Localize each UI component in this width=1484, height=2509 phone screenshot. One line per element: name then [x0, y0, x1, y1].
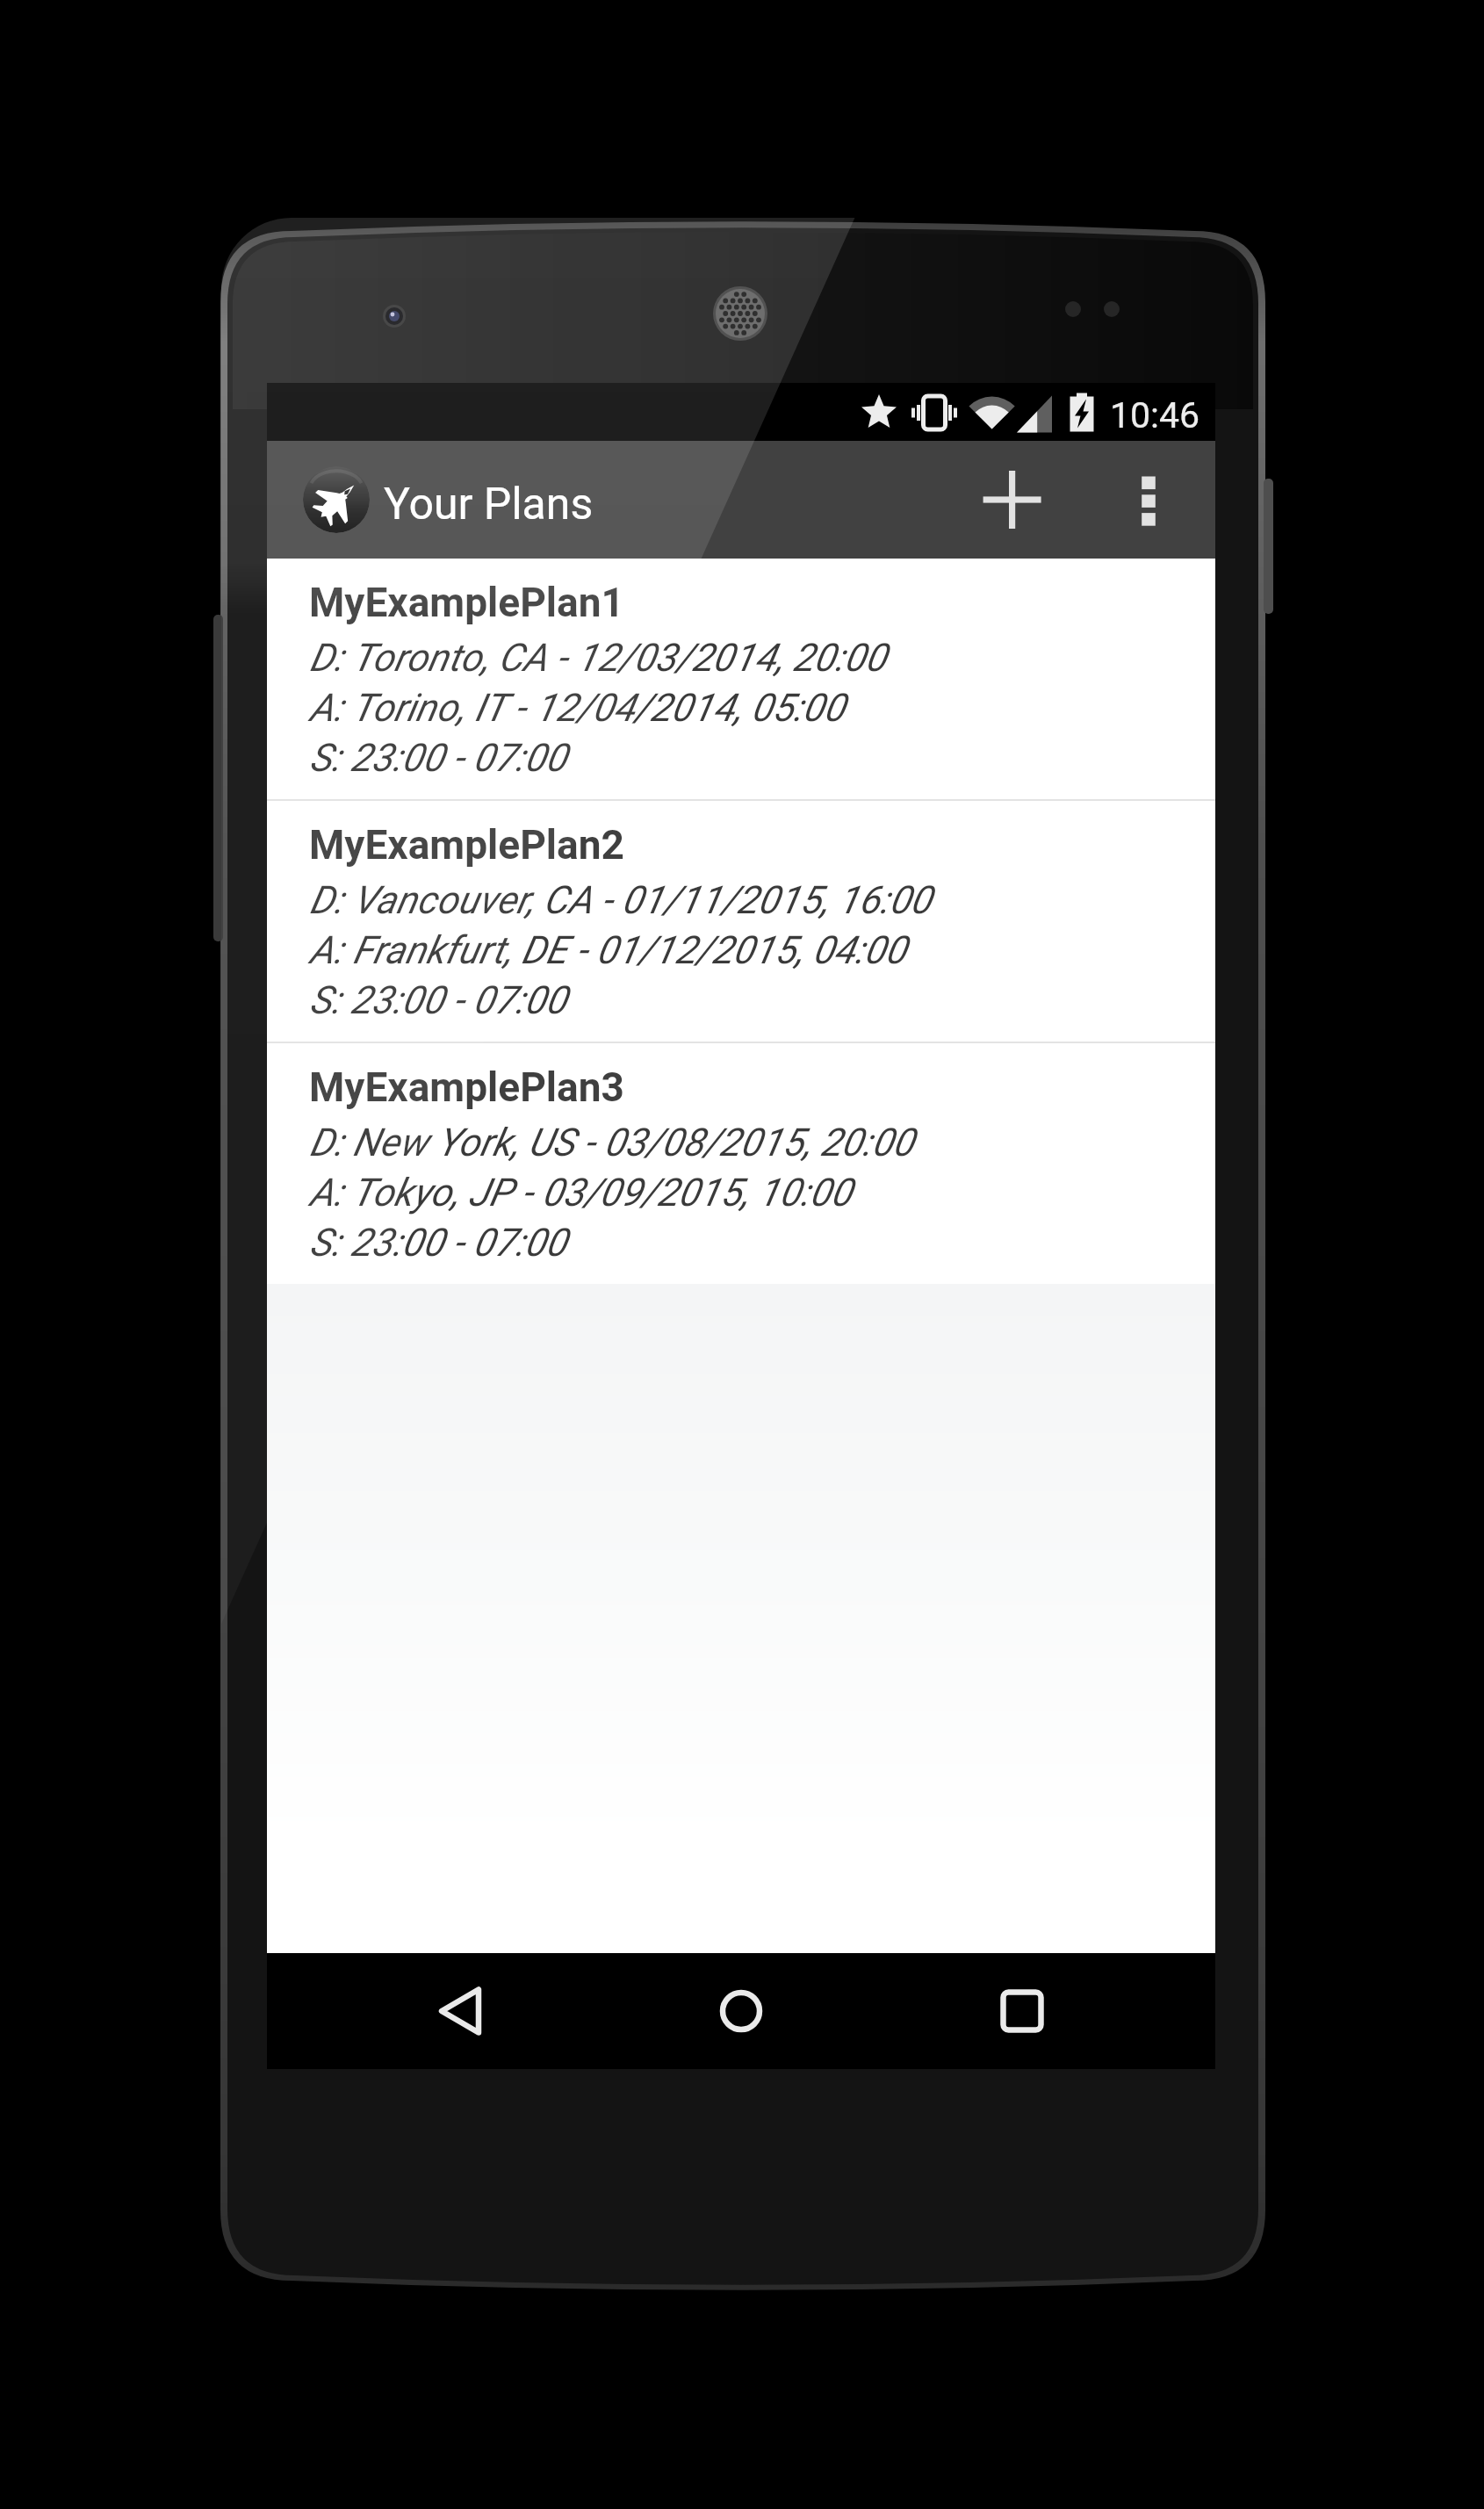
button[interactable]: Back	[267, 1953, 583, 2069]
staticText: MyExamplePlan3	[309, 1063, 624, 1111]
staticText: A: Tokyo, JP - 03/09/2015, 10:00	[309, 1170, 852, 1215]
button[interactable]: Home	[583, 1953, 899, 2069]
staticText: MyExamplePlan2	[309, 821, 624, 869]
staticText: A: Torino, IT - 12/04/2014, 05:00	[309, 685, 845, 731]
staticText: D: Vancouver, CA - 01/11/2015, 16:00	[309, 877, 932, 923]
button[interactable]: App icon	[303, 466, 370, 533]
button[interactable]: Add plan	[955, 442, 1070, 558]
button[interactable]: MyExamplePlan2	[267, 801, 1215, 1042]
staticText: 10:46	[1110, 394, 1200, 436]
button[interactable]: MyExamplePlan1	[267, 559, 1215, 799]
staticText: D: New York, US - 03/08/2015, 20:00	[309, 1120, 914, 1165]
button[interactable]: More options	[1105, 442, 1192, 558]
staticText: D: Toronto, CA - 12/03/2014, 20:00	[309, 635, 886, 681]
button[interactable]: Recent apps	[899, 1953, 1215, 2069]
staticText: MyExamplePlan1	[309, 579, 624, 626]
staticText: S: 23:00 - 07:00	[309, 735, 567, 781]
staticText: Your Plans	[384, 479, 594, 530]
button[interactable]: MyExamplePlan3	[267, 1043, 1215, 1284]
staticText: S: 23:00 - 07:00	[309, 1220, 567, 1265]
staticText: A: Frankfurt, DE - 01/12/2015, 04:00	[309, 927, 906, 973]
staticText: S: 23:00 - 07:00	[309, 977, 567, 1023]
